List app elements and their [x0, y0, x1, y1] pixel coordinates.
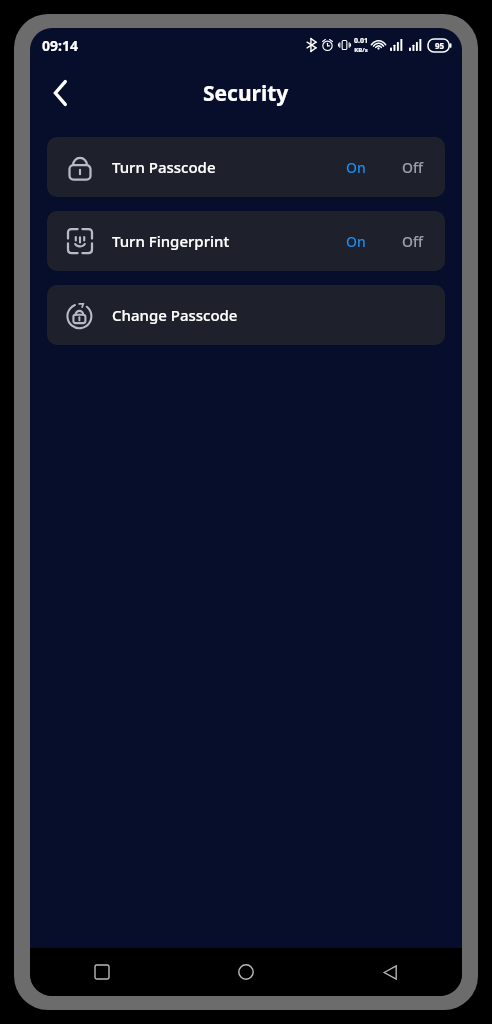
button[interactable]: Home: [174, 948, 318, 996]
button[interactable]: On: [340, 152, 372, 183]
staticText: 09:14: [42, 36, 78, 55]
button[interactable]: Back: [318, 948, 462, 996]
staticText: On: [346, 232, 366, 251]
staticText: Turn Passcode: [112, 157, 216, 177]
button[interactable]: Recent apps: [30, 948, 174, 996]
staticText: 0.01: [354, 36, 368, 46]
button[interactable]: On: [340, 226, 372, 257]
staticText: Off: [402, 232, 423, 251]
button[interactable]: Turn Passcode: [47, 137, 445, 197]
staticText: Turn Fingerprint: [112, 231, 230, 251]
staticText: KB/s: [354, 46, 368, 54]
staticText: Change Passcode: [112, 305, 238, 325]
staticText: On: [346, 158, 366, 177]
staticText: Off: [402, 158, 423, 177]
button[interactable]: Off: [396, 152, 429, 183]
button[interactable]: Back: [38, 71, 82, 115]
staticText: Security: [203, 79, 289, 108]
button[interactable]: Turn Fingerprint: [47, 211, 445, 271]
button[interactable]: Off: [396, 226, 429, 257]
button[interactable]: Change Passcode: [47, 285, 445, 345]
staticText: 95: [435, 40, 445, 51]
